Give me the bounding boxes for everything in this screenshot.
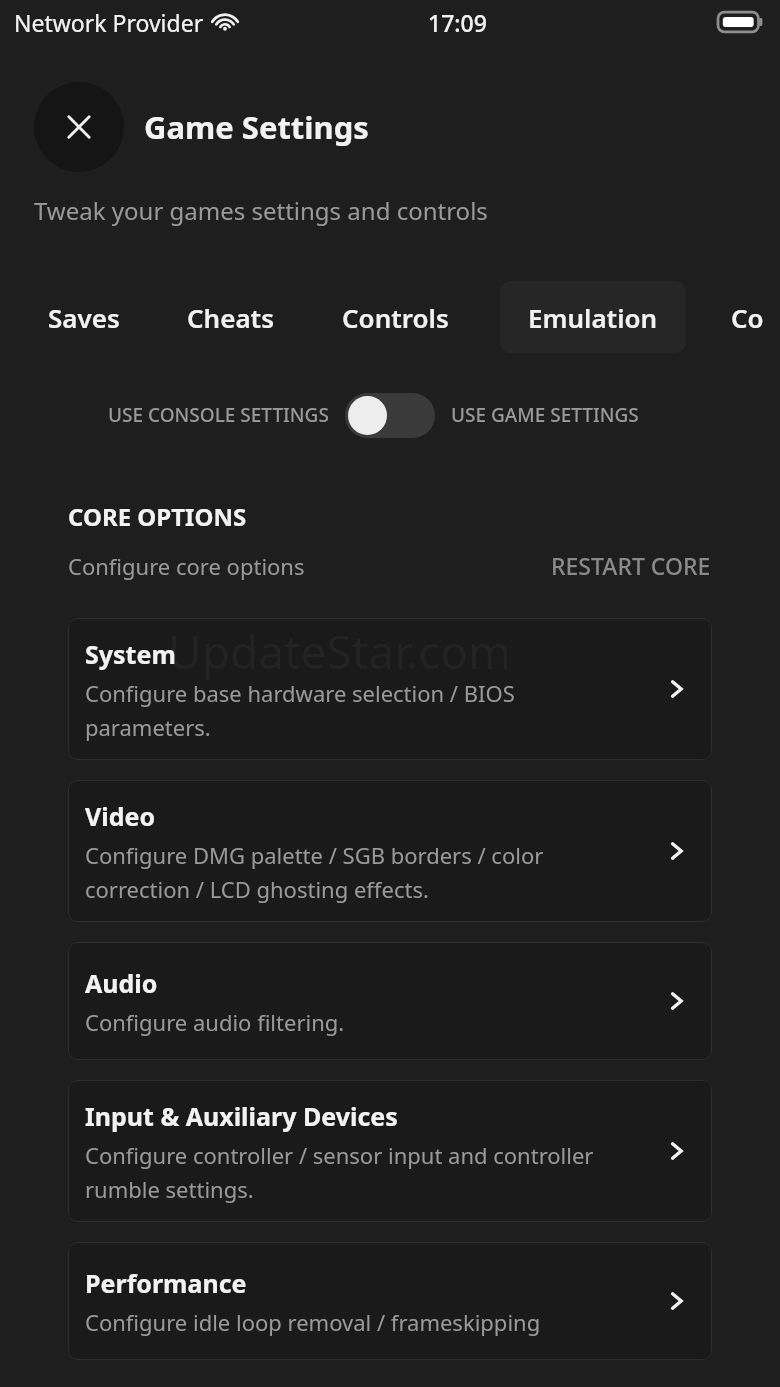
staticText: Emulation — [528, 300, 658, 334]
staticText: Performance — [85, 1266, 247, 1300]
staticText: Confi — [731, 300, 780, 334]
button[interactable]: Settings source toggle — [345, 393, 435, 438]
button[interactable]: RESTART CORE — [551, 550, 780, 581]
button[interactable]: Saves — [48, 281, 120, 353]
staticText: USE CONSOLE SETTINGS — [108, 402, 329, 428]
staticText: Game Settings — [144, 106, 369, 148]
button[interactable]: Performance — [68, 1242, 712, 1360]
staticText: Configure base hardware selection / BIOS… — [85, 678, 630, 742]
staticText: Video — [85, 799, 156, 833]
staticText: Cheats — [187, 300, 274, 334]
staticText: Controls — [342, 300, 449, 334]
button[interactable]: Controls — [342, 281, 449, 353]
staticText: Configure controller / sensor input and … — [85, 1140, 630, 1204]
staticText: System — [85, 637, 176, 671]
staticText: Configure core options — [68, 551, 305, 581]
staticText: Configure audio filtering. — [85, 1007, 345, 1037]
button[interactable]: Input & Auxiliary Devices — [68, 1080, 712, 1222]
staticText: Configure idle loop removal / frameskipp… — [85, 1307, 541, 1337]
button[interactable]: UpdateStar.com — [68, 618, 712, 760]
button[interactable]: Confi — [731, 281, 780, 353]
button[interactable]: Cheats — [187, 281, 274, 353]
button[interactable]: Video — [68, 780, 712, 922]
staticText: USE GAME SETTINGS — [451, 402, 639, 428]
staticText: Tweak your games settings and controls — [34, 194, 488, 227]
staticText: CORE OPTIONS — [68, 500, 247, 533]
staticText: RESTART CORE — [551, 550, 711, 581]
staticText: UpdateStar.com — [168, 620, 512, 683]
staticText: Configure DMG palette / SGB borders / co… — [85, 840, 630, 904]
button[interactable]: Emulation — [500, 281, 686, 353]
staticText: Input & Auxiliary Devices — [85, 1099, 398, 1133]
button[interactable]: Audio — [68, 942, 712, 1060]
staticText: Network Provider — [14, 7, 204, 38]
button[interactable]: Close — [34, 82, 124, 172]
staticText: Audio — [85, 966, 158, 1000]
staticText: Saves — [48, 300, 120, 334]
staticText: 17:09 — [428, 7, 487, 38]
